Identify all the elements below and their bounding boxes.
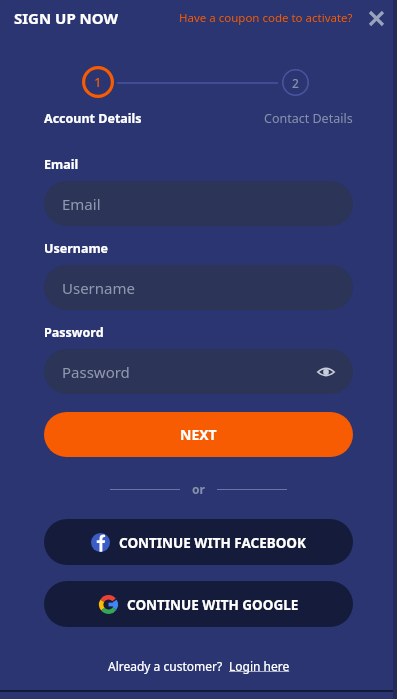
staticText: NEXT — [180, 425, 217, 444]
staticText: Contact Details — [264, 110, 353, 127]
staticText: Password — [62, 362, 130, 382]
staticText: CONTINUE WITH GOOGLE — [127, 596, 299, 614]
button[interactable]: Username — [44, 265, 353, 310]
staticText: Password — [44, 324, 104, 341]
button[interactable]: NEXT — [44, 412, 353, 457]
staticText: Already a customer? — [108, 658, 223, 674]
button[interactable]: 1 — [82, 66, 114, 98]
staticText: 2 — [292, 75, 299, 91]
staticText: Username — [62, 278, 135, 298]
staticText: Account Details — [44, 110, 142, 127]
button[interactable]: CONTINUE WITH GOOGLE — [44, 581, 353, 627]
staticText: Email — [44, 156, 79, 173]
button[interactable]: CONTINUE WITH FACEBOOK — [44, 519, 353, 565]
button[interactable]: 2 — [282, 69, 309, 96]
button[interactable]: Show password — [315, 361, 337, 383]
button[interactable]: Login here — [229, 658, 290, 674]
staticText: Email — [62, 194, 101, 214]
staticText: Login here — [229, 658, 290, 674]
staticText: Username — [44, 240, 109, 257]
staticText: SIGN UP NOW — [14, 8, 119, 28]
staticText: Have a coupon code to activate? — [179, 10, 353, 26]
button[interactable]: Have a coupon code to activate? — [177, 6, 355, 30]
staticText: 1 — [94, 73, 102, 91]
button[interactable]: Email — [44, 181, 353, 226]
staticText: or — [192, 481, 205, 497]
staticText: CONTINUE WITH FACEBOOK — [119, 534, 307, 552]
button[interactable]: Close — [365, 7, 387, 29]
button[interactable]: Password — [44, 349, 353, 394]
